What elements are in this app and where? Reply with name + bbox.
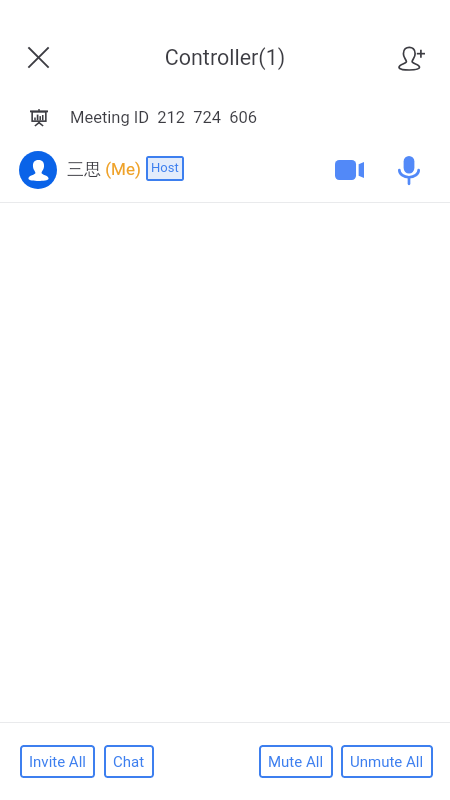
button[interactable]: Microphone on (389, 150, 429, 190)
staticText: Chat (113, 753, 145, 771)
button[interactable]: Invite All (20, 745, 95, 778)
staticText: Controller(1) (0, 45, 450, 70)
staticText: Invite All (29, 753, 86, 771)
button[interactable]: Add participant (392, 38, 432, 78)
staticText: Meeting ID 212 724 606 (70, 108, 258, 127)
staticText: Unmute All (350, 753, 424, 771)
staticText: 三思 (Me) (67, 159, 141, 180)
button[interactable]: 三思 (Me) (0, 142, 450, 198)
button[interactable]: Mute All (259, 745, 333, 778)
staticText: Host (151, 160, 179, 175)
button[interactable]: Close (19, 38, 58, 77)
button[interactable]: Unmute All (341, 745, 433, 778)
button[interactable]: Chat (104, 745, 154, 778)
button[interactable]: Camera on (329, 150, 369, 190)
staticText: Mute All (268, 753, 324, 771)
